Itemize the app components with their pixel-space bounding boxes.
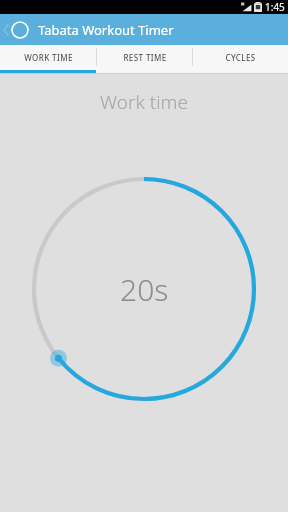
button[interactable]: WORK TIME: [0, 45, 96, 70]
staticText: 1:45: [265, 0, 285, 14]
button[interactable]: CYCLES: [193, 45, 288, 70]
staticText: REST TIME: [123, 52, 167, 63]
button[interactable]: Navigate up: [0, 14, 33, 45]
staticText: 20s: [120, 269, 169, 310]
button[interactable]: Work time duration dial, 20 seconds: [24, 169, 264, 409]
button[interactable]: REST TIME: [97, 45, 192, 70]
staticText: Tabata Workout Timer: [38, 21, 174, 39]
staticText: CYCLES: [225, 52, 256, 63]
staticText: WORK TIME: [24, 52, 73, 63]
staticText: Work time: [100, 89, 189, 115]
